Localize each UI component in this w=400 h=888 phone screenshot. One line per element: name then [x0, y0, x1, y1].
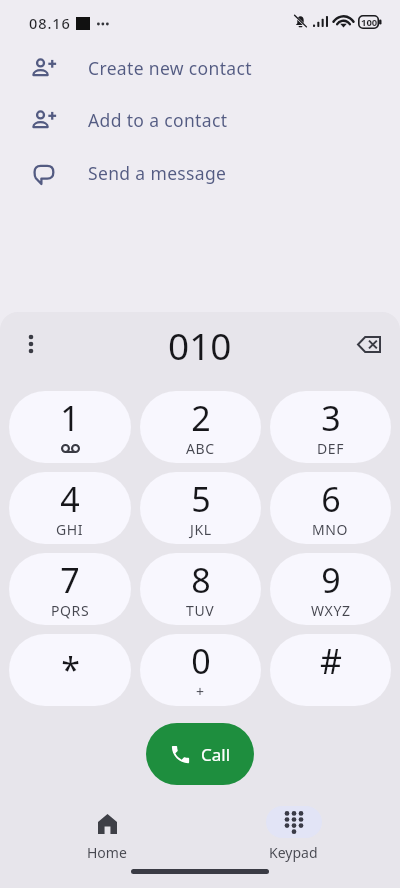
staticText: Add to a contact	[88, 108, 228, 132]
button[interactable]: 6	[270, 472, 391, 544]
button[interactable]: Keypad	[200, 806, 387, 862]
staticText: Home	[87, 843, 127, 862]
button[interactable]: 7	[9, 553, 131, 625]
staticText: DEF	[317, 439, 345, 458]
staticText: Create new contact	[88, 56, 252, 80]
staticText: 010	[168, 320, 232, 370]
staticText: *	[61, 646, 80, 692]
staticText: Keypad	[269, 843, 318, 862]
staticText: PQRS	[51, 601, 90, 620]
staticText: ABC	[186, 439, 215, 458]
staticText: 7	[60, 557, 80, 603]
button[interactable]: #	[270, 634, 391, 706]
button[interactable]: Call	[146, 723, 254, 785]
button[interactable]: 2	[140, 391, 261, 463]
button[interactable]: Home	[13, 806, 200, 862]
staticText: 0	[191, 638, 211, 684]
staticText: 100	[361, 16, 378, 29]
staticText: 3	[321, 395, 341, 441]
staticText: Call	[201, 743, 231, 766]
button[interactable]: Add to a contact	[0, 95, 400, 145]
button[interactable]: More options	[11, 324, 51, 364]
staticText: 5	[191, 476, 211, 522]
staticText: 6	[321, 476, 341, 522]
button[interactable]: 3	[270, 391, 391, 463]
button[interactable]: Backspace	[348, 323, 390, 365]
button[interactable]: 8	[140, 553, 261, 625]
staticText: #	[320, 638, 342, 684]
button[interactable]: 1	[9, 391, 131, 463]
staticText: MNO	[312, 520, 349, 539]
staticText: 8	[191, 557, 211, 603]
staticText: 08.16	[29, 13, 71, 33]
button[interactable]: Create new contact	[0, 43, 400, 93]
staticText: +	[196, 682, 205, 701]
staticText: 9	[321, 557, 341, 603]
button[interactable]: 5	[140, 472, 261, 544]
staticText: WXYZ	[311, 601, 351, 620]
staticText: GHI	[56, 520, 84, 539]
staticText: 4	[60, 476, 80, 522]
button[interactable]: *	[9, 634, 131, 706]
button[interactable]: 0	[140, 634, 261, 706]
staticText: 1	[60, 395, 80, 441]
staticText: 2	[191, 395, 211, 441]
button[interactable]: 4	[9, 472, 131, 544]
staticText: TUV	[186, 601, 215, 620]
button[interactable]: 9	[270, 553, 391, 625]
staticText: Send a message	[88, 161, 227, 185]
staticText: JKL	[190, 520, 212, 539]
button[interactable]: Send a message	[0, 148, 400, 198]
